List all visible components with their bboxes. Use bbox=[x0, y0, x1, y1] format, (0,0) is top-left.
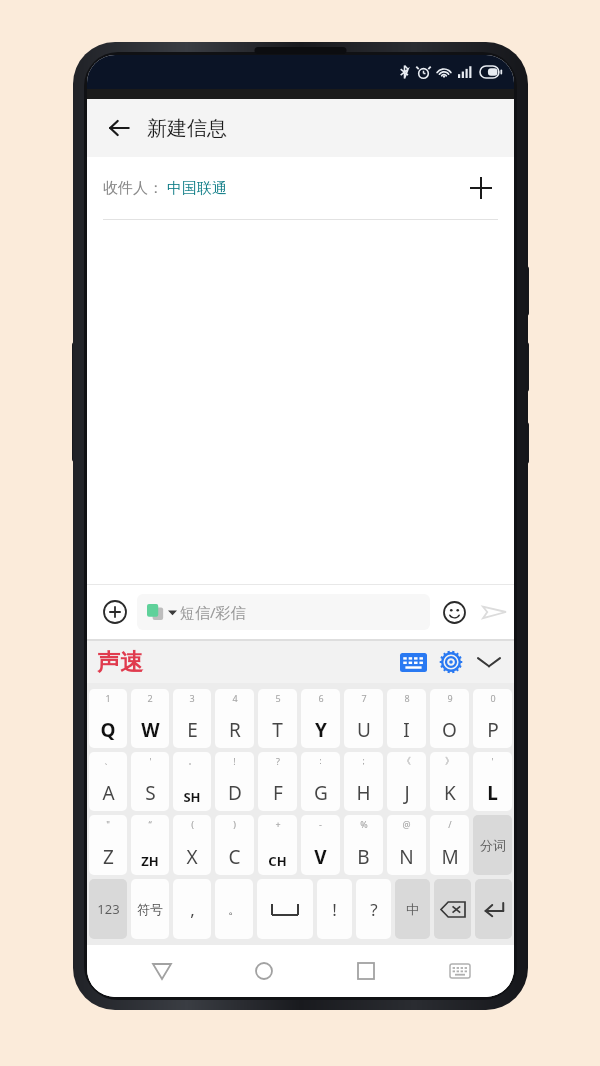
button[interactable]: Recents bbox=[344, 949, 388, 993]
button[interactable]: @ bbox=[387, 815, 426, 875]
staticText: + bbox=[275, 818, 281, 830]
staticText: ? bbox=[370, 898, 378, 921]
button[interactable]: 、 bbox=[89, 752, 127, 811]
button[interactable]: “ bbox=[131, 815, 169, 875]
staticText: 7 bbox=[361, 692, 367, 704]
button[interactable]: Emoji bbox=[434, 592, 474, 632]
button[interactable]: 分词 bbox=[473, 815, 512, 875]
staticText: @ bbox=[402, 818, 411, 830]
button[interactable]: Keyboard layout bbox=[394, 643, 432, 681]
staticText: ' bbox=[491, 755, 494, 767]
button[interactable]: ' bbox=[131, 752, 169, 811]
staticText: 中 bbox=[406, 901, 419, 917]
button[interactable]: Enter bbox=[475, 879, 512, 939]
button[interactable]: 123 bbox=[89, 879, 127, 939]
button[interactable]: ' bbox=[473, 752, 512, 811]
staticText: D bbox=[228, 780, 242, 806]
staticText: 1 bbox=[105, 692, 111, 704]
staticText: I bbox=[403, 717, 410, 743]
button[interactable]: ! bbox=[215, 752, 254, 811]
staticText: 》 bbox=[445, 755, 454, 766]
staticText: 0 bbox=[490, 692, 496, 704]
button[interactable]: 2 bbox=[131, 689, 169, 748]
button[interactable]: ( bbox=[173, 815, 211, 875]
staticText: 8 bbox=[404, 692, 410, 704]
staticText: T bbox=[272, 717, 283, 743]
staticText: SH bbox=[183, 788, 201, 806]
staticText: ) bbox=[233, 818, 236, 830]
staticText: Y bbox=[315, 717, 327, 743]
button[interactable]: Settings bbox=[432, 643, 470, 681]
button[interactable]: 。 bbox=[215, 879, 253, 939]
staticText: 收件人： bbox=[103, 179, 163, 198]
staticText: ( bbox=[191, 818, 194, 830]
button[interactable]: Send bbox=[474, 592, 514, 632]
button[interactable]: Home bbox=[242, 949, 286, 993]
button[interactable]: 7 bbox=[344, 689, 383, 748]
button[interactable]: 符号 bbox=[131, 879, 169, 939]
button[interactable]: 3 bbox=[173, 689, 211, 748]
button[interactable]: ? bbox=[356, 879, 391, 939]
button[interactable]: Hide keyboard bbox=[438, 949, 482, 993]
staticText: 。 bbox=[228, 901, 241, 917]
staticText: 新建信息 bbox=[147, 116, 227, 141]
staticText: / bbox=[448, 818, 452, 830]
button[interactable]: " bbox=[89, 815, 127, 875]
button[interactable]: 。 bbox=[173, 752, 211, 811]
staticText: Z bbox=[103, 844, 114, 870]
staticText: H bbox=[356, 780, 371, 806]
staticText: R bbox=[229, 717, 241, 743]
staticText: A bbox=[102, 780, 115, 806]
button[interactable]: 6 bbox=[301, 689, 340, 748]
staticText: 分词 bbox=[480, 837, 506, 853]
button[interactable]: 9 bbox=[430, 689, 469, 748]
button[interactable]: ) bbox=[215, 815, 254, 875]
button[interactable]: 1 bbox=[89, 689, 127, 748]
staticText: 。 bbox=[188, 755, 197, 766]
button[interactable]: 4 bbox=[215, 689, 254, 748]
button[interactable]: Delete bbox=[434, 879, 471, 939]
staticText: % bbox=[360, 818, 368, 830]
staticText: ； bbox=[359, 755, 368, 766]
button[interactable]: ； bbox=[344, 752, 383, 811]
button[interactable]: Space bbox=[257, 879, 313, 939]
staticText: N bbox=[399, 844, 414, 870]
staticText: 2 bbox=[147, 692, 153, 704]
button[interactable]: 》 bbox=[430, 752, 469, 811]
button[interactable]: % bbox=[344, 815, 383, 875]
button[interactable]: 收件人： bbox=[87, 157, 514, 219]
staticText: W bbox=[141, 717, 160, 743]
staticText: U bbox=[357, 717, 371, 743]
staticText: 4 bbox=[232, 692, 238, 704]
button[interactable]: 5 bbox=[258, 689, 297, 748]
staticText: , bbox=[190, 898, 195, 921]
staticText: G bbox=[314, 780, 328, 806]
button[interactable]: ? bbox=[258, 752, 297, 811]
button[interactable]: Add attachment bbox=[95, 592, 135, 632]
staticText: 5 bbox=[275, 692, 281, 704]
staticText: E bbox=[187, 717, 198, 743]
staticText: ! bbox=[332, 898, 337, 921]
staticText: - bbox=[319, 818, 322, 830]
button[interactable]: 短信/彩信 bbox=[137, 594, 430, 630]
staticText: F bbox=[273, 780, 283, 806]
button[interactable]: ： bbox=[301, 752, 340, 811]
button[interactable]: - bbox=[301, 815, 340, 875]
staticText: J bbox=[404, 780, 410, 806]
button[interactable]: 《 bbox=[387, 752, 426, 811]
staticText: 声速 bbox=[97, 648, 143, 677]
staticText: C bbox=[228, 844, 241, 870]
button[interactable]: , bbox=[173, 879, 211, 939]
staticText: Q bbox=[100, 717, 116, 743]
button[interactable]: Hide keyboard bbox=[470, 643, 508, 681]
button[interactable]: 中 bbox=[395, 879, 430, 939]
button[interactable]: Add recipient bbox=[460, 167, 502, 209]
button[interactable]: / bbox=[430, 815, 469, 875]
staticText: “ bbox=[148, 818, 152, 830]
button[interactable]: 8 bbox=[387, 689, 426, 748]
button[interactable]: ! bbox=[317, 879, 352, 939]
button[interactable]: 0 bbox=[473, 689, 512, 748]
button[interactable]: + bbox=[258, 815, 297, 875]
button[interactable]: Back bbox=[97, 106, 141, 150]
button[interactable]: Back bbox=[140, 949, 184, 993]
